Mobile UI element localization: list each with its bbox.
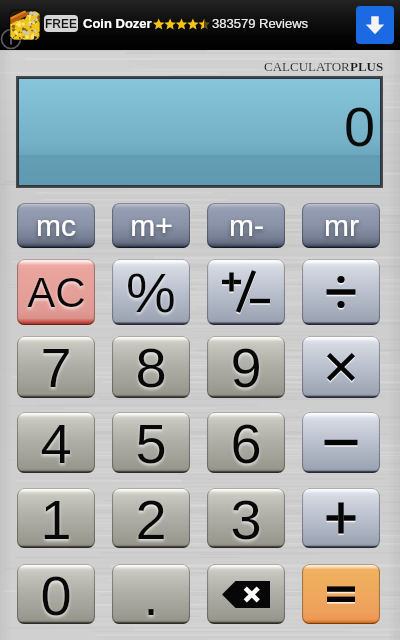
button[interactable]: Download (356, 6, 394, 44)
staticText: PLUS (350, 59, 384, 73)
staticText: 8 (135, 336, 167, 398)
button[interactable]: AC (17, 259, 95, 325)
button[interactable]: 4 (17, 412, 95, 473)
staticText: 7 (40, 336, 72, 398)
button[interactable]: FREE (0, 0, 400, 50)
staticText: Coin Dozer (83, 16, 152, 31)
button[interactable]: mr (302, 203, 380, 248)
button[interactable]: 3 (207, 488, 285, 548)
button[interactable]: m- (207, 203, 285, 248)
staticText: FREE (45, 17, 78, 30)
staticText: CALCULATOR (264, 59, 350, 73)
staticText: 6 (230, 412, 262, 473)
button[interactable]: 1 (17, 488, 95, 548)
staticText: 1 (40, 488, 72, 548)
button[interactable]: 0 (17, 564, 95, 624)
staticText: m+ (130, 209, 173, 243)
staticText: 3 (230, 488, 262, 548)
staticText: 0 (344, 95, 376, 158)
button[interactable]: % (112, 259, 190, 325)
button[interactable]: Equals (302, 564, 380, 624)
button[interactable]: Subtract (302, 412, 380, 473)
button[interactable]: 8 (112, 336, 190, 398)
staticText: m- (229, 209, 264, 243)
staticText: 383579 Reviews (212, 16, 309, 31)
button[interactable]: Add (302, 488, 380, 548)
button[interactable]: mc (17, 203, 95, 248)
button[interactable]: 2 (112, 488, 190, 548)
button[interactable]: m+ (112, 203, 190, 248)
staticText: 4 (40, 412, 72, 473)
button[interactable]: . (112, 564, 190, 624)
button[interactable]: 5 (112, 412, 190, 473)
button[interactable]: Backspace (207, 564, 285, 624)
staticText: % (126, 261, 176, 324)
button[interactable]: 6 (207, 412, 285, 473)
staticText: mr (324, 209, 359, 243)
button[interactable]: Multiply (302, 336, 380, 398)
staticText: 9 (230, 336, 262, 398)
button[interactable]: 7 (17, 336, 95, 398)
staticText: 5 (135, 412, 167, 473)
button[interactable]: 9 (207, 336, 285, 398)
staticText: 2 (135, 488, 167, 548)
staticText: mc (36, 209, 76, 243)
button[interactable]: Divide (302, 259, 380, 325)
button[interactable]: Plus minus (207, 259, 285, 325)
staticText: AC (27, 269, 86, 316)
staticText: 0 (40, 564, 72, 624)
staticText: . (143, 564, 159, 624)
